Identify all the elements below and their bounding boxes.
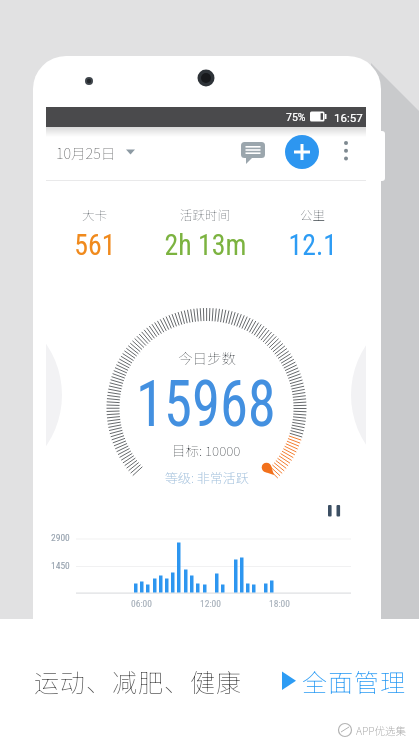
- staticText: 1450: [51, 560, 70, 571]
- staticText: 10月25日: [56, 142, 116, 163]
- staticText: 等级: 非常活跃: [165, 468, 249, 487]
- staticText: 全面管理: [302, 663, 407, 699]
- staticText: 561: [74, 228, 116, 263]
- button[interactable]: [296, 666, 406, 698]
- staticText: 今日步数: [178, 347, 236, 368]
- staticText: 活跃时间: [180, 205, 231, 223]
- button[interactable]: [334, 136, 358, 168]
- staticText: 15968: [136, 367, 276, 442]
- staticText: 目标: 10000: [172, 440, 241, 460]
- staticText: 16:57: [334, 111, 363, 124]
- staticText: APP优选集: [356, 723, 407, 738]
- staticText: 公里: [300, 205, 326, 223]
- staticText: 运动、减肥、健康: [34, 663, 243, 699]
- staticText: 75%: [286, 111, 306, 123]
- staticText: 2h 13m: [165, 228, 246, 263]
- button[interactable]: [238, 139, 268, 166]
- staticText: 2900: [51, 532, 70, 543]
- button[interactable]: [322, 499, 346, 523]
- staticText: 06:00: [131, 598, 152, 609]
- button[interactable]: 10月25日: [50, 134, 144, 170]
- staticText: 12.1: [288, 228, 337, 263]
- staticText: 大卡: [82, 205, 108, 223]
- staticText: 12:00: [200, 598, 221, 609]
- button[interactable]: [285, 135, 319, 169]
- staticText: 18:00: [269, 598, 290, 609]
